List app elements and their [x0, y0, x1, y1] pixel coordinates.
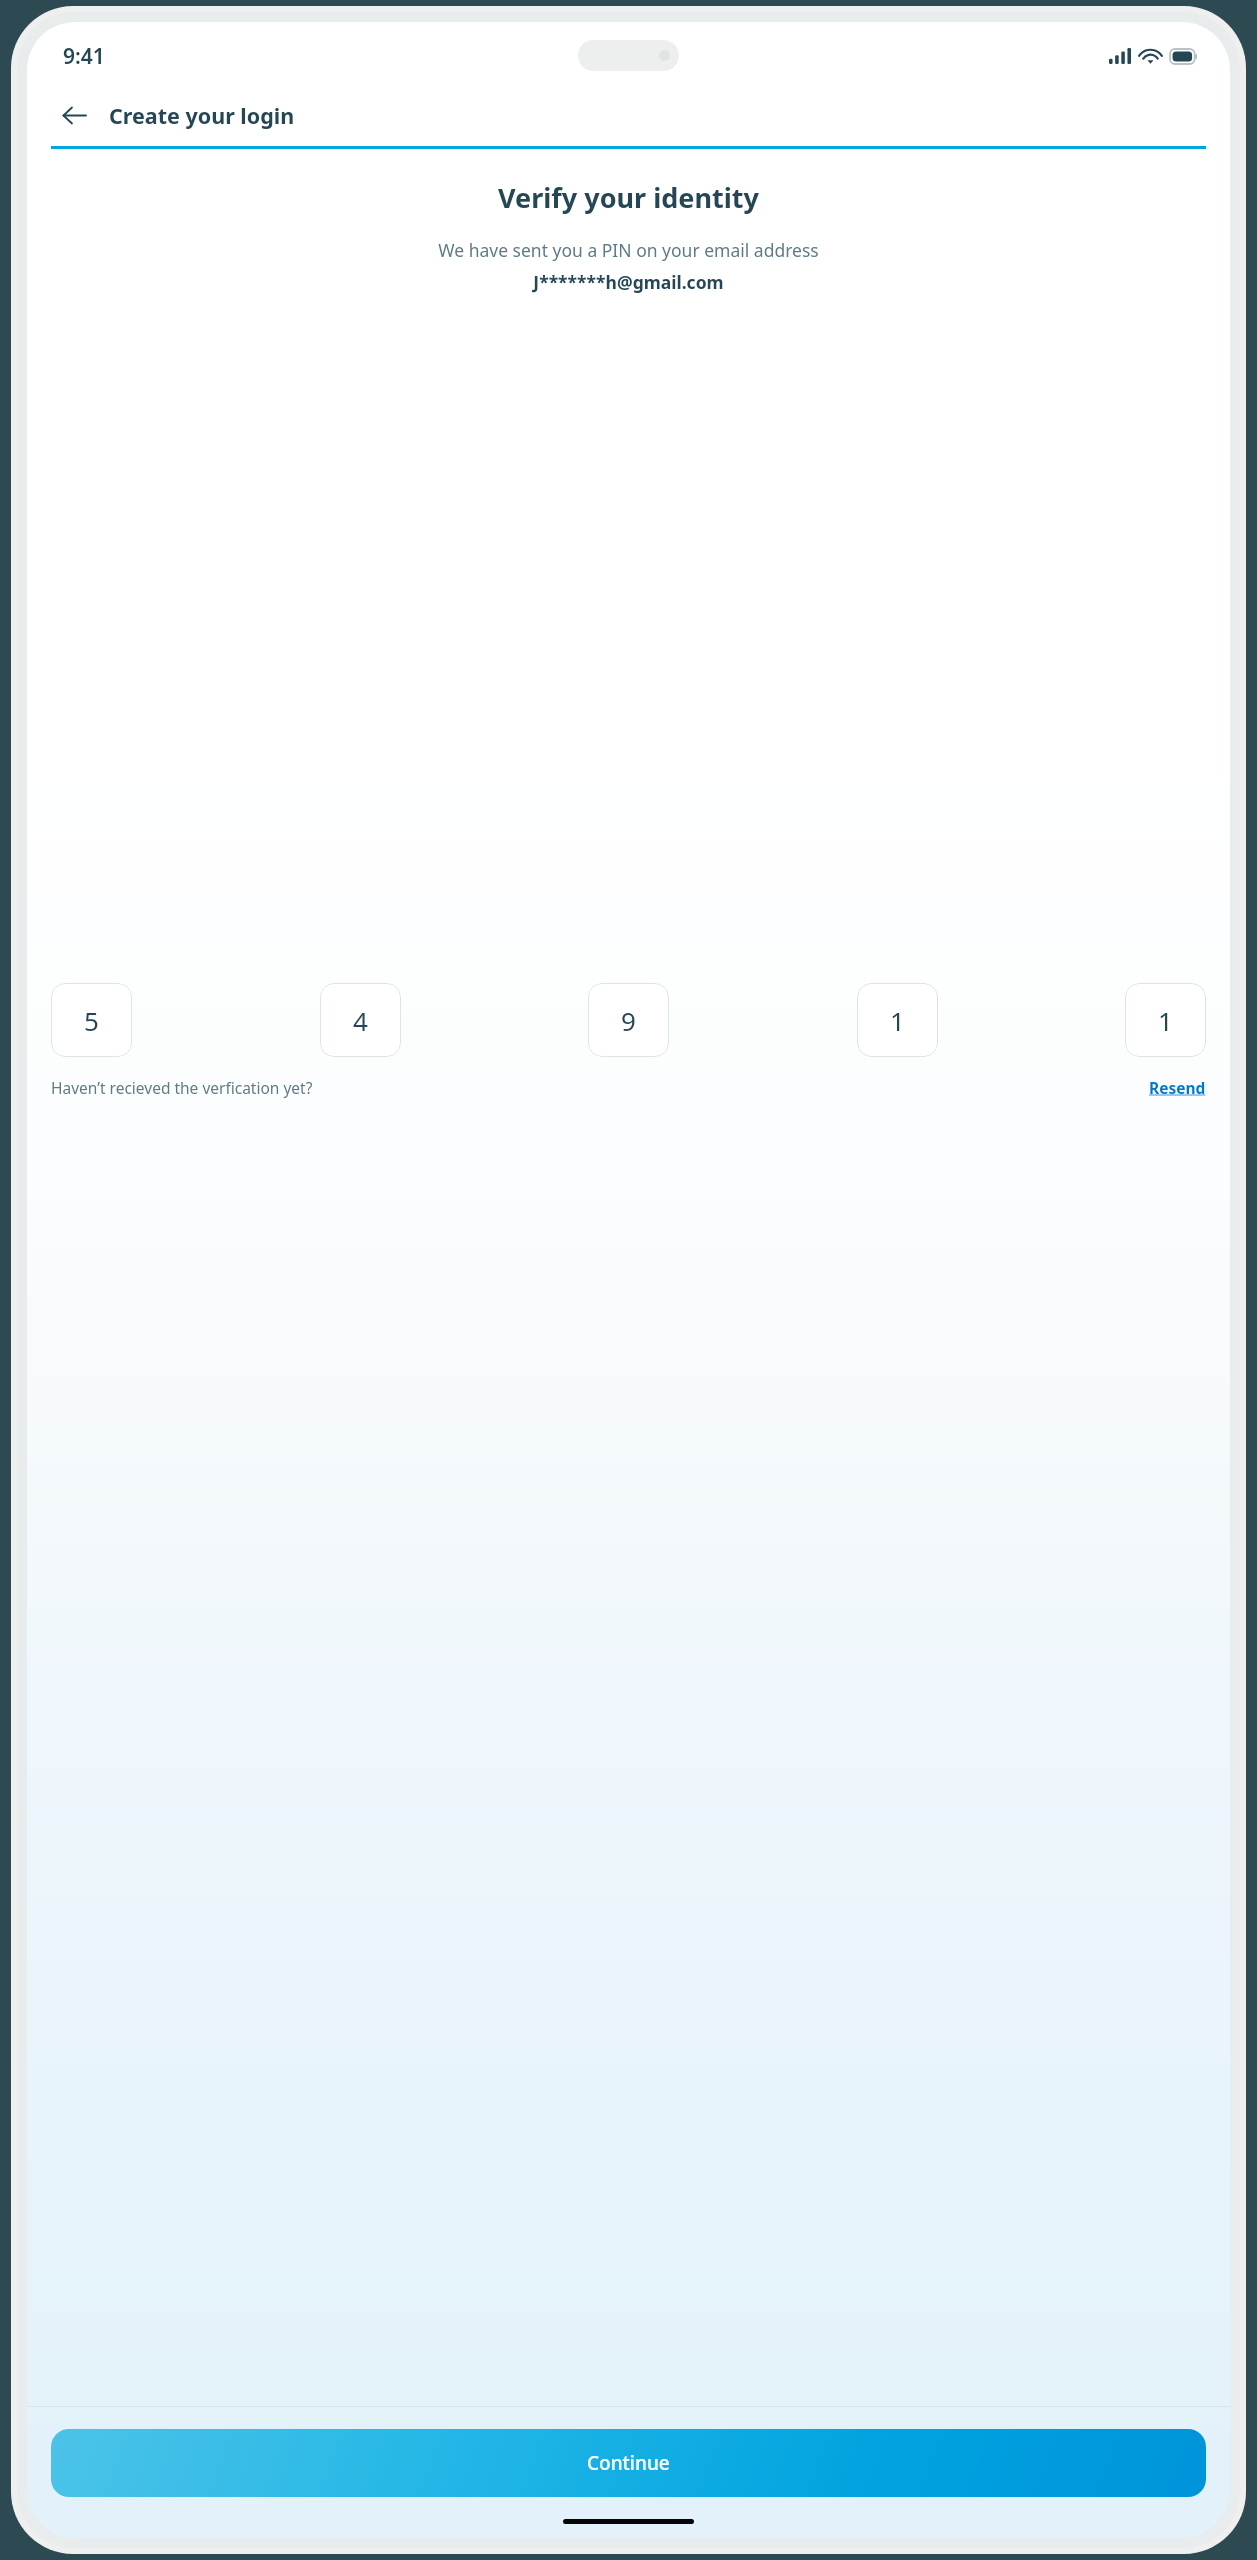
- staticText: We have sent you a PIN on your email add…: [27, 238, 1230, 262]
- staticText: 4: [353, 1003, 368, 1038]
- staticText: Continue: [587, 2450, 670, 2476]
- staticText: 9: [621, 1003, 636, 1038]
- button[interactable]: Continue: [51, 2429, 1206, 2497]
- staticText: 9:41: [63, 42, 105, 71]
- button[interactable]: 5: [51, 983, 132, 1057]
- staticText: 5: [84, 1003, 99, 1038]
- staticText: Resend: [1149, 1077, 1206, 1098]
- staticText: Verify your identity: [27, 179, 1230, 216]
- button[interactable]: 1: [857, 983, 938, 1057]
- staticText: 1: [1158, 1003, 1173, 1038]
- button[interactable]: Back: [51, 92, 97, 138]
- button[interactable]: 1: [1125, 983, 1206, 1057]
- staticText: Create your login: [109, 101, 295, 130]
- button[interactable]: 4: [320, 983, 401, 1057]
- staticText: 1: [890, 1003, 905, 1038]
- button[interactable]: Resend: [1149, 1077, 1206, 1098]
- staticText: Haven’t recieved the verfication yet?: [51, 1077, 313, 1098]
- staticText: J*******h@gmail.com: [27, 270, 1230, 294]
- button[interactable]: 9: [588, 983, 669, 1057]
